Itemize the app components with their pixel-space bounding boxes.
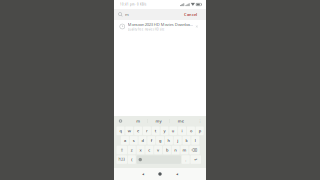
button[interactable]: ↵: [190, 155, 201, 164]
staticText: i: [182, 128, 183, 133]
button[interactable]: o: [187, 126, 195, 135]
staticText: ⋮: [198, 119, 202, 123]
staticText: ⌫: [191, 148, 197, 152]
button[interactable]: Home: [154, 168, 165, 180]
staticText: x: [140, 147, 142, 153]
staticText: u: [172, 128, 175, 133]
staticText: my: [155, 118, 161, 124]
button[interactable]: Google: [117, 116, 123, 126]
button[interactable]: p: [196, 126, 204, 135]
button[interactable]: ⇧: [116, 146, 127, 154]
staticText: c: [148, 147, 150, 153]
button[interactable]: c: [145, 146, 153, 154]
staticText: d: [141, 138, 143, 143]
staticText: y: [163, 128, 165, 133]
button[interactable]: x: [137, 146, 145, 154]
staticText: 10:41 pm ⋅ 0 KB/s: [120, 3, 146, 6]
button[interactable]: me: [170, 116, 192, 126]
staticText: quality free movies HD site: [128, 28, 165, 31]
staticText: Monsoon 2023 HD Movies Downloa…: [128, 22, 193, 27]
staticText: .: [185, 157, 186, 162]
button[interactable]: my: [147, 116, 169, 126]
button[interactable]: i: [178, 126, 186, 135]
button[interactable]: t: [152, 126, 160, 135]
button[interactable]: a: [121, 136, 129, 145]
button[interactable]: .: [182, 155, 190, 164]
staticText: q: [119, 128, 121, 133]
button[interactable]: b: [163, 146, 171, 154]
button[interactable]: w: [125, 126, 133, 135]
button[interactable]: z: [128, 146, 136, 154]
button[interactable]: e: [134, 126, 142, 135]
staticText: ⇧: [120, 148, 123, 152]
staticText: v: [157, 147, 159, 153]
button[interactable]: m: [180, 146, 188, 154]
button[interactable]: l: [191, 136, 199, 145]
staticText: m: [182, 147, 186, 153]
button[interactable]: h: [165, 136, 173, 145]
staticText: t: [155, 128, 157, 133]
button[interactable]: u: [169, 126, 177, 135]
button[interactable]: q: [116, 126, 124, 135]
button[interactable]: v: [154, 146, 162, 154]
staticText: e: [137, 128, 139, 133]
staticText: w: [128, 128, 131, 133]
staticText: p: [199, 128, 201, 133]
button[interactable]: d: [138, 136, 146, 145]
staticText: b: [166, 147, 168, 153]
button[interactable]: Monsoon 2023 HD Movies Downloa…: [114, 20, 206, 33]
staticText: ◀: [142, 172, 144, 175]
button[interactable]: (: [128, 155, 136, 164]
button[interactable]: More suggestions: [197, 116, 202, 126]
staticText: Cancel: [184, 12, 197, 17]
staticText: a: [124, 138, 126, 143]
staticText: m: [136, 118, 140, 124]
button[interactable]: m: [129, 116, 147, 126]
button[interactable]: Space: [137, 155, 181, 164]
staticText: s: [133, 138, 135, 143]
staticText: h: [167, 138, 170, 143]
button[interactable]: r: [143, 126, 151, 135]
button[interactable]: ⌫: [189, 146, 200, 154]
button[interactable]: Back: [137, 168, 148, 180]
staticText: l: [195, 138, 196, 143]
button[interactable]: ?123: [116, 155, 127, 164]
button[interactable]: j: [174, 136, 182, 145]
button[interactable]: f: [147, 136, 155, 145]
staticText: me: [178, 118, 184, 124]
staticText: n: [174, 147, 177, 153]
staticText: o: [190, 128, 192, 133]
button[interactable]: Recents: [171, 168, 182, 180]
button[interactable]: g: [156, 136, 164, 145]
button[interactable]: s: [130, 136, 138, 145]
staticText: (: [131, 157, 132, 162]
staticText: k: [185, 138, 187, 143]
staticText: f: [151, 138, 152, 143]
button[interactable]: Cancel: [184, 12, 197, 17]
button[interactable]: k: [182, 136, 190, 145]
staticText: j: [177, 138, 178, 143]
button[interactable]: y: [160, 126, 168, 135]
staticText: z: [131, 147, 133, 153]
staticText: m: [125, 12, 129, 17]
staticText: g: [159, 138, 161, 143]
staticText: ↵: [194, 157, 197, 162]
button[interactable]: n: [172, 146, 180, 154]
staticText: ◀: [176, 172, 178, 175]
staticText: r: [146, 128, 148, 133]
staticText: ?123: [118, 158, 125, 161]
